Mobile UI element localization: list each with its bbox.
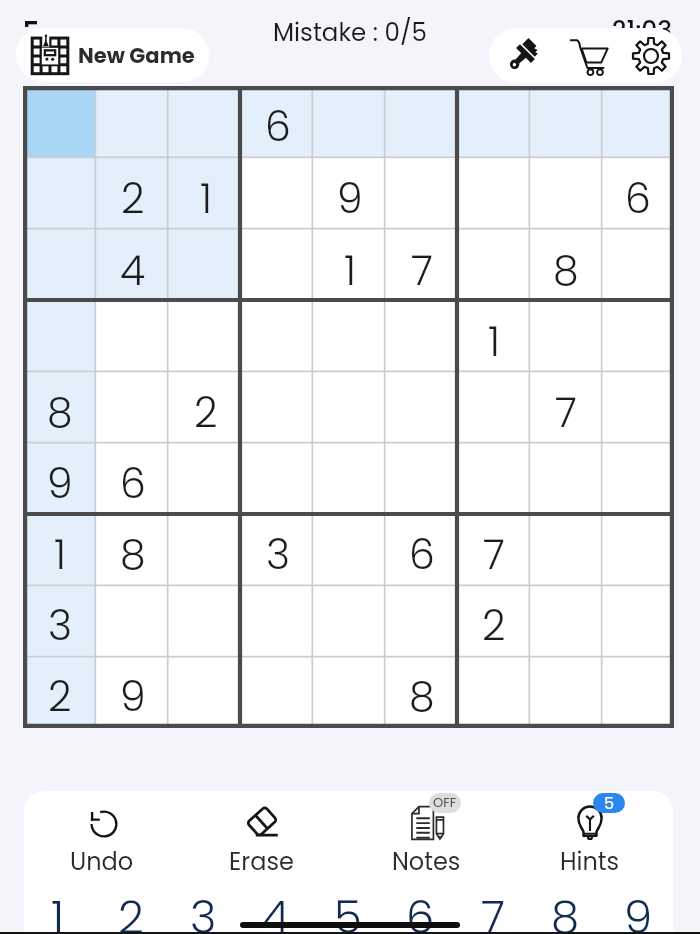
button[interactable]	[602, 373, 674, 444]
button[interactable]	[530, 86, 602, 158]
button[interactable]: Themes	[496, 29, 550, 83]
button[interactable]: 9	[23, 444, 96, 515]
button[interactable]	[458, 657, 530, 728]
button[interactable]	[314, 515, 386, 586]
button[interactable]	[458, 158, 530, 230]
button[interactable]: 1	[23, 515, 96, 586]
button[interactable]	[458, 373, 530, 444]
button[interactable]	[96, 586, 169, 657]
button[interactable]: Erase	[206, 791, 316, 887]
button[interactable]	[602, 302, 674, 373]
button[interactable]	[23, 302, 96, 373]
button[interactable]: 1	[22, 880, 94, 934]
button[interactable]	[530, 302, 602, 373]
button[interactable]	[169, 86, 242, 158]
button[interactable]: 6	[602, 158, 674, 230]
button[interactable]: Shop	[562, 29, 616, 83]
button[interactable]	[386, 158, 458, 230]
button[interactable]	[530, 657, 602, 728]
button[interactable]	[602, 230, 674, 302]
button[interactable]	[169, 302, 242, 373]
button[interactable]: 1	[169, 158, 242, 230]
button[interactable]: Notes	[371, 791, 481, 887]
button[interactable]	[314, 302, 386, 373]
button[interactable]	[314, 444, 386, 515]
button[interactable]: 9	[96, 657, 169, 728]
button[interactable]	[458, 444, 530, 515]
staticText: 21:03	[612, 13, 673, 48]
button[interactable]: Hints	[535, 791, 645, 887]
button[interactable]	[530, 515, 602, 586]
button[interactable]	[386, 86, 458, 158]
button[interactable]: Settings	[624, 29, 678, 83]
button[interactable]: 8	[96, 515, 169, 586]
button[interactable]	[602, 86, 674, 158]
button[interactable]	[169, 657, 242, 728]
button[interactable]	[602, 515, 674, 586]
button[interactable]	[23, 86, 96, 158]
button[interactable]: 9	[602, 880, 674, 934]
button[interactable]	[242, 444, 314, 515]
button[interactable]	[602, 657, 674, 728]
button[interactable]: 7	[458, 515, 530, 586]
button[interactable]	[314, 586, 386, 657]
button[interactable]: 2	[95, 880, 167, 934]
button[interactable]	[458, 86, 530, 158]
button[interactable]	[169, 444, 242, 515]
button[interactable]	[314, 373, 386, 444]
button[interactable]: 3	[167, 880, 239, 934]
button[interactable]: 4	[96, 230, 169, 302]
button[interactable]	[458, 230, 530, 302]
button[interactable]	[314, 657, 386, 728]
button[interactable]	[96, 86, 169, 158]
button[interactable]: 6	[384, 880, 456, 934]
button[interactable]: 2	[458, 586, 530, 657]
button[interactable]	[314, 86, 386, 158]
button[interactable]	[242, 230, 314, 302]
button[interactable]: New Game	[16, 28, 209, 82]
button[interactable]	[602, 444, 674, 515]
button[interactable]: 8	[530, 230, 602, 302]
button[interactable]	[386, 302, 458, 373]
button[interactable]	[530, 158, 602, 230]
button[interactable]	[242, 586, 314, 657]
button[interactable]: 2	[169, 373, 242, 444]
button[interactable]	[169, 586, 242, 657]
button[interactable]	[169, 515, 242, 586]
button[interactable]: 4	[240, 880, 312, 934]
button[interactable]	[242, 373, 314, 444]
button[interactable]	[96, 373, 169, 444]
button[interactable]	[386, 373, 458, 444]
button[interactable]: 7	[386, 230, 458, 302]
button[interactable]: 3	[23, 586, 96, 657]
staticText: 9	[47, 455, 73, 512]
button[interactable]: 7	[530, 373, 602, 444]
button[interactable]	[530, 444, 602, 515]
button[interactable]	[602, 586, 674, 657]
button[interactable]: 2	[23, 657, 96, 728]
button[interactable]: 6	[96, 444, 169, 515]
button[interactable]: 1	[458, 302, 530, 373]
button[interactable]	[530, 586, 602, 657]
button[interactable]	[169, 230, 242, 302]
button[interactable]	[386, 444, 458, 515]
button[interactable]: 7	[457, 880, 529, 934]
button[interactable]: 8	[23, 373, 96, 444]
button[interactable]: 6	[386, 515, 458, 586]
button[interactable]	[242, 302, 314, 373]
button[interactable]	[386, 586, 458, 657]
button[interactable]	[23, 158, 96, 230]
button[interactable]: 3	[242, 515, 314, 586]
button[interactable]	[23, 230, 96, 302]
button[interactable]: 2	[96, 158, 169, 230]
button[interactable]	[242, 158, 314, 230]
button[interactable]: 9	[314, 158, 386, 230]
button[interactable]: Undo	[47, 791, 157, 887]
button[interactable]: 6	[242, 86, 314, 158]
button[interactable]: 8	[386, 657, 458, 728]
button[interactable]: 5	[312, 880, 384, 934]
button[interactable]	[242, 657, 314, 728]
button[interactable]: 1	[314, 230, 386, 302]
button[interactable]	[96, 302, 169, 373]
button[interactable]: 8	[529, 880, 601, 934]
